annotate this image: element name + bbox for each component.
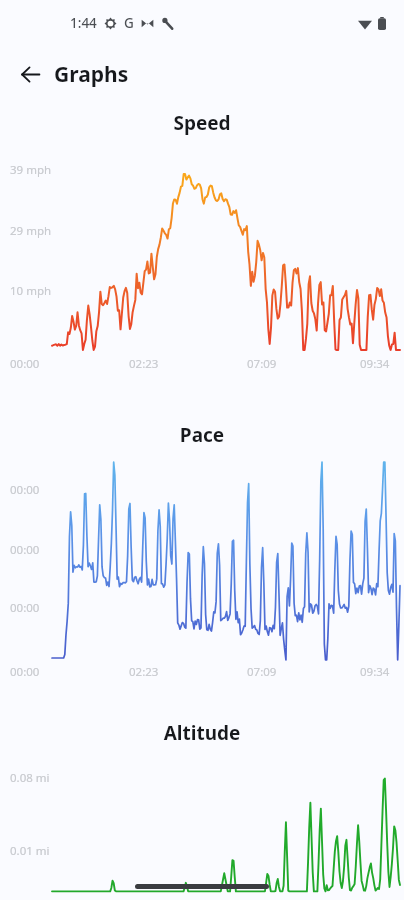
staticText: Pace <box>0 422 404 448</box>
staticText: 00:00 <box>10 664 40 680</box>
staticText: G <box>124 14 134 32</box>
staticText: 07:09 <box>247 664 277 680</box>
staticText: Speed <box>0 110 404 136</box>
staticText: 00:00 <box>10 542 40 558</box>
staticText: 00:00 <box>10 482 40 498</box>
staticText: Altitude <box>0 720 404 746</box>
staticText: 0.08 mi <box>10 770 50 786</box>
staticText: 09:34 <box>360 664 390 680</box>
staticText: 09:34 <box>360 356 390 372</box>
staticText: 10 mph <box>10 283 52 299</box>
staticText: 07:09 <box>247 356 277 372</box>
button[interactable]: Back <box>12 56 48 92</box>
staticText: 1:44 <box>70 14 97 32</box>
staticText: 00:00 <box>10 356 40 372</box>
staticText: 02:23 <box>129 356 159 372</box>
staticText: 39 mph <box>10 162 52 178</box>
staticText: 0.01 mi <box>10 843 50 859</box>
staticText: Graphs <box>54 60 129 89</box>
staticText: 02:23 <box>129 664 159 680</box>
staticText: 00:00 <box>10 600 40 616</box>
staticText: 29 mph <box>10 223 52 239</box>
